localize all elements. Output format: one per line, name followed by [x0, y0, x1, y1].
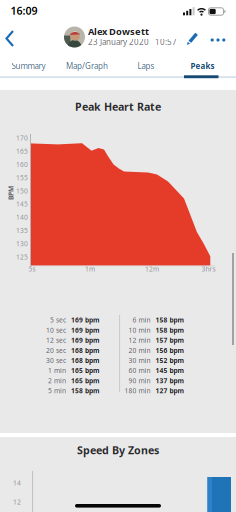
staticText: 158 bpm: [155, 326, 184, 335]
staticText: 5 min: [48, 386, 66, 395]
staticText: 157 bpm: [155, 336, 184, 345]
staticText: 152 bpm: [155, 356, 184, 365]
staticText: 135: [16, 226, 28, 235]
staticText: 169 bpm: [71, 316, 100, 324]
staticText: 12 min: [128, 336, 150, 345]
staticText: Peak Heart Rate: [75, 99, 161, 114]
staticText: 168 bpm: [71, 346, 100, 355]
staticText: 10 sec: [46, 326, 66, 335]
staticText: 12: [13, 498, 21, 506]
staticText: 170: [16, 134, 28, 142]
staticText: 20 min: [128, 346, 150, 355]
staticText: 20 sec: [46, 346, 66, 355]
button[interactable]: Laps: [126, 57, 166, 75]
staticText: Summary: [11, 61, 45, 71]
staticText: 12m: [145, 264, 159, 273]
staticText: 2 min: [48, 376, 66, 385]
staticText: 130: [16, 239, 28, 248]
button[interactable]: Summary: [2, 57, 54, 75]
staticText: 30 min: [128, 356, 150, 365]
staticText: 5s: [28, 264, 35, 273]
staticText: 180 min: [124, 386, 150, 395]
staticText: 12 sec: [46, 336, 66, 345]
staticText: Speed By Zones: [77, 443, 159, 457]
staticText: Laps: [137, 61, 154, 71]
staticText: 140: [16, 213, 28, 222]
staticText: 30 sec: [46, 356, 66, 365]
staticText: Alex Dowsett: [88, 25, 149, 38]
staticText: 145 bpm: [155, 366, 184, 375]
staticText: 158 bpm: [155, 316, 184, 324]
button[interactable]: Back: [0, 26, 20, 51]
staticText: 14: [13, 479, 21, 487]
button[interactable]: Peaks: [180, 57, 224, 75]
staticText: BPM: [4, 189, 18, 197]
staticText: 150: [16, 186, 28, 195]
staticText: 90 min: [128, 376, 150, 385]
staticText: 127 bpm: [155, 386, 184, 395]
staticText: 5 sec: [50, 316, 66, 324]
staticText: 165 bpm: [71, 376, 100, 385]
staticText: 169 bpm: [71, 336, 100, 345]
button[interactable]: Map/Graph: [59, 57, 115, 75]
staticText: 158 bpm: [71, 386, 100, 395]
staticText: Map/Graph: [66, 61, 108, 71]
staticText: 160: [16, 160, 28, 169]
staticText: 60 min: [128, 366, 150, 375]
staticText: Peaks: [190, 61, 214, 71]
staticText: 1 min: [48, 366, 66, 375]
staticText: 165 bpm: [71, 366, 100, 375]
button[interactable]: More: [207, 32, 229, 48]
staticText: 1m: [85, 264, 95, 273]
staticText: 168 bpm: [71, 356, 100, 365]
staticText: 3hrs: [201, 264, 215, 273]
staticText: 137 bpm: [155, 376, 184, 385]
staticText: 10 min: [128, 326, 150, 335]
staticText: 145: [16, 200, 28, 208]
staticText: 155: [16, 173, 28, 182]
staticText: 156 bpm: [155, 346, 184, 355]
staticText: 23 January 2020 10:57: [88, 37, 177, 47]
staticText: 125: [16, 252, 28, 261]
staticText: 16:09: [10, 3, 37, 18]
staticText: 165: [16, 147, 28, 156]
button[interactable]: Edit: [185, 30, 200, 46]
staticText: 169 bpm: [71, 326, 100, 335]
staticText: 6 min: [132, 316, 150, 324]
